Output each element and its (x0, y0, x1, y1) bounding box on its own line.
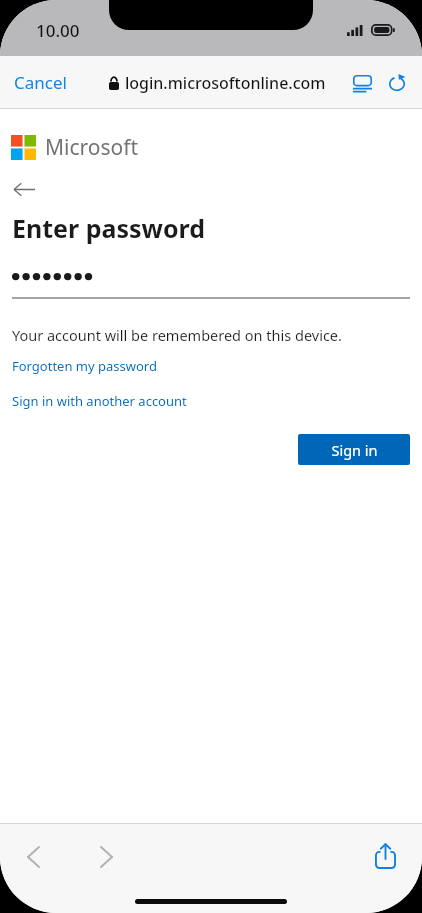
button[interactable]: Cancel (0, 63, 81, 102)
staticText: Forgotten my password (12, 357, 157, 375)
staticText: Sign in (331, 440, 378, 460)
staticText: Sign in with another account (12, 392, 187, 410)
button[interactable]: Reader view (345, 67, 380, 100)
staticText: login.microsoftonline.com (125, 72, 326, 94)
button[interactable]: Back (16, 835, 51, 879)
button[interactable]: Reload (380, 66, 422, 100)
staticText: Cancel (14, 71, 67, 94)
button[interactable]: Sign in (298, 434, 410, 465)
staticText: 10.00 (36, 19, 80, 42)
button[interactable]: Share (367, 835, 404, 877)
staticText: Microsoft (45, 133, 139, 162)
button[interactable]: Forward (89, 835, 124, 879)
button[interactable]: Sign in with another account (12, 392, 187, 410)
staticText: Enter password (12, 211, 206, 245)
staticText: Your account will be remembered on this … (12, 325, 342, 345)
button[interactable]: Forgotten my password (12, 357, 157, 375)
button[interactable]: Back (6, 176, 43, 203)
button[interactable] (12, 267, 410, 299)
